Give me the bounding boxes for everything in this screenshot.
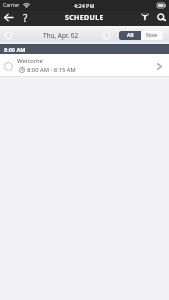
staticText: All [127,32,134,39]
button[interactable]: Search [154,9,168,24]
button[interactable]: Welcome [0,54,169,76]
staticText: 8:00 AM [4,46,26,53]
button[interactable]: Now [141,31,163,40]
button[interactable]: Filter [138,9,152,24]
staticText: SCHEDULE [65,13,104,23]
button[interactable]: Previous day [4,31,13,40]
staticText: Now [146,32,158,39]
staticText: ? [23,11,28,25]
button[interactable]: Next day [102,31,111,40]
staticText: 8:00 AM - 8:15 AM [27,66,76,74]
staticText: Thu, Apr. 02 [43,31,79,40]
button[interactable]: Back [1,11,16,26]
button[interactable]: All [119,31,141,40]
button[interactable]: Help [18,11,32,26]
staticText: 4:24 PM [74,2,95,9]
staticText: Welcome [17,57,43,65]
staticText: Carrier [3,2,20,9]
